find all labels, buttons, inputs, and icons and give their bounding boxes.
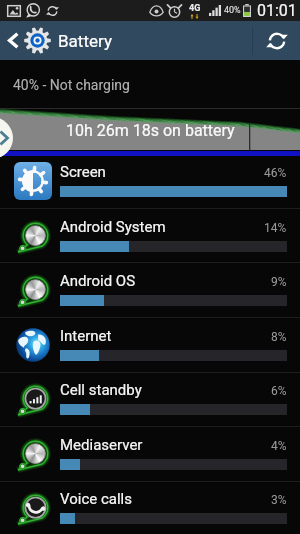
staticText: 6% (271, 384, 287, 398)
staticText: Android System (60, 218, 166, 236)
button[interactable]: 10h 26m 18s on battery (0, 109, 300, 157)
button[interactable]: Android OS (0, 263, 300, 317)
staticText: Android OS (60, 272, 136, 290)
button[interactable]: Previous day (0, 117, 13, 159)
staticText: Cell standby (60, 381, 142, 399)
staticText: 46% (264, 166, 287, 180)
button[interactable]: Android System (0, 209, 300, 262)
staticText: 14% (264, 221, 287, 235)
staticText: 4G (189, 3, 201, 14)
staticText: 4% (271, 439, 287, 453)
button[interactable]: Voice calls (0, 482, 300, 534)
staticText: 01:01 (257, 1, 297, 20)
staticText: Screen (60, 163, 106, 181)
staticText: Internet (60, 327, 112, 345)
staticText: 3% (271, 493, 287, 507)
staticText: Battery (58, 31, 112, 51)
staticText: 9% (271, 275, 287, 289)
staticText: 40% (224, 5, 241, 16)
button[interactable]: Battery (0, 21, 122, 60)
staticText: Voice calls (60, 490, 132, 508)
staticText: 40% - Not charging (13, 77, 130, 93)
button[interactable]: Refresh (253, 21, 300, 60)
button[interactable]: Screen (0, 154, 300, 208)
button[interactable]: Internet (0, 318, 300, 372)
staticText: Mediaserver (60, 436, 143, 454)
button[interactable]: Mediaserver (0, 427, 300, 481)
staticText: 8% (271, 330, 287, 344)
button[interactable]: Cell standby (0, 372, 300, 426)
staticText: 10h 26m 18s on battery (66, 121, 235, 140)
